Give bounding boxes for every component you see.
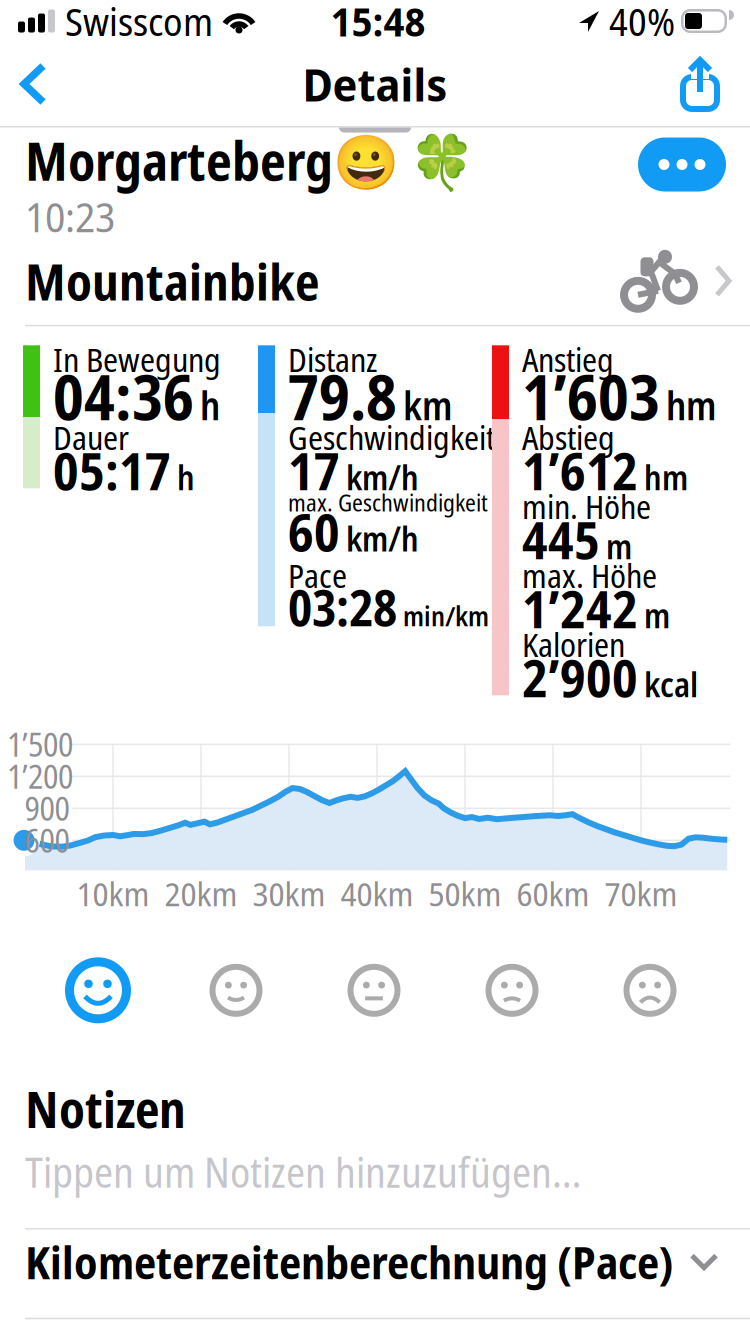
staticText: 60km bbox=[516, 871, 589, 916]
button[interactable]: Mood 1 bbox=[63, 955, 133, 1025]
button[interactable]: Mood 2 bbox=[201, 955, 271, 1025]
staticText: Anstieg bbox=[522, 345, 614, 372]
staticText: Details bbox=[302, 53, 447, 115]
button[interactable]: Mood 4 bbox=[477, 955, 547, 1025]
staticText: In Bewegung bbox=[53, 345, 221, 372]
staticText: hm bbox=[644, 465, 688, 490]
staticText: Notizen bbox=[25, 1086, 186, 1130]
staticText: Pace bbox=[288, 561, 347, 588]
button[interactable]: More options bbox=[638, 137, 726, 191]
button[interactable]: Mood 3 bbox=[339, 955, 409, 1025]
staticText: 17 bbox=[288, 451, 340, 490]
button[interactable]: Mood 5 bbox=[615, 955, 685, 1025]
button[interactable]: Back bbox=[0, 47, 47, 121]
staticText: min/km bbox=[403, 606, 489, 626]
staticText: m bbox=[606, 534, 632, 559]
button[interactable]: Share bbox=[678, 48, 750, 120]
staticText: 60 bbox=[288, 512, 340, 552]
staticText: Morgarteberg😀 🍀 bbox=[25, 137, 475, 182]
staticText: 445 bbox=[522, 520, 600, 559]
staticText: km/h bbox=[346, 465, 419, 490]
staticText: Tippen um Notizen hinzuzufügen… bbox=[25, 1153, 581, 1190]
staticText: h bbox=[200, 391, 220, 420]
staticText: Abstieg bbox=[522, 423, 615, 450]
staticText: Swisscom bbox=[65, 0, 213, 47]
staticText: Kilometerzeitenberechnung (Pace) bbox=[25, 1242, 674, 1282]
staticText: km/h bbox=[346, 526, 419, 552]
staticText: 1’603 bbox=[522, 373, 660, 420]
staticText: 10:23 bbox=[25, 199, 115, 234]
staticText: 70km bbox=[604, 871, 677, 916]
staticText: Distanz bbox=[288, 345, 377, 372]
staticText: Geschwindigkeit bbox=[288, 423, 495, 450]
staticText: 40% bbox=[609, 0, 675, 47]
staticText: max. Höhe bbox=[522, 561, 657, 588]
staticText: 03:28 bbox=[288, 589, 397, 626]
staticText: 04:36 bbox=[53, 373, 194, 420]
staticText: 2’900 bbox=[522, 658, 638, 697]
button[interactable]: Mountainbike bbox=[0, 234, 750, 325]
staticText: 05:17 bbox=[53, 451, 171, 490]
staticText: 1’612 bbox=[522, 451, 638, 490]
staticText: Dauer bbox=[53, 423, 129, 450]
staticText: kcal bbox=[644, 672, 698, 697]
staticText: 10km bbox=[76, 871, 149, 916]
staticText: 1’242 bbox=[522, 589, 638, 628]
staticText: 1’500 bbox=[7, 722, 73, 766]
staticText: 50km bbox=[428, 871, 501, 916]
staticText: 15:48 bbox=[330, 0, 425, 48]
staticText: 79.8 bbox=[288, 373, 397, 420]
staticText: 40km bbox=[340, 871, 413, 916]
staticText: m bbox=[644, 603, 670, 628]
staticText: max. Geschwindigkeit bbox=[288, 492, 488, 512]
staticText: 30km bbox=[252, 871, 325, 916]
staticText: 600 bbox=[24, 818, 69, 862]
staticText: hm bbox=[666, 391, 716, 420]
button[interactable]: Tippen um Notizen hinzuzufügen… bbox=[0, 1153, 750, 1190]
staticText: Kalorien bbox=[522, 630, 625, 657]
staticText: h bbox=[177, 465, 195, 490]
button[interactable]: Kilometerzeitenberechnung (Pace) bbox=[0, 1230, 750, 1318]
staticText: Mountainbike bbox=[25, 259, 319, 303]
staticText: min. Höhe bbox=[522, 492, 651, 519]
staticText: km bbox=[403, 391, 452, 420]
staticText: 20km bbox=[164, 871, 237, 916]
staticText: 900 bbox=[24, 786, 69, 830]
staticText: 1’200 bbox=[7, 754, 73, 798]
